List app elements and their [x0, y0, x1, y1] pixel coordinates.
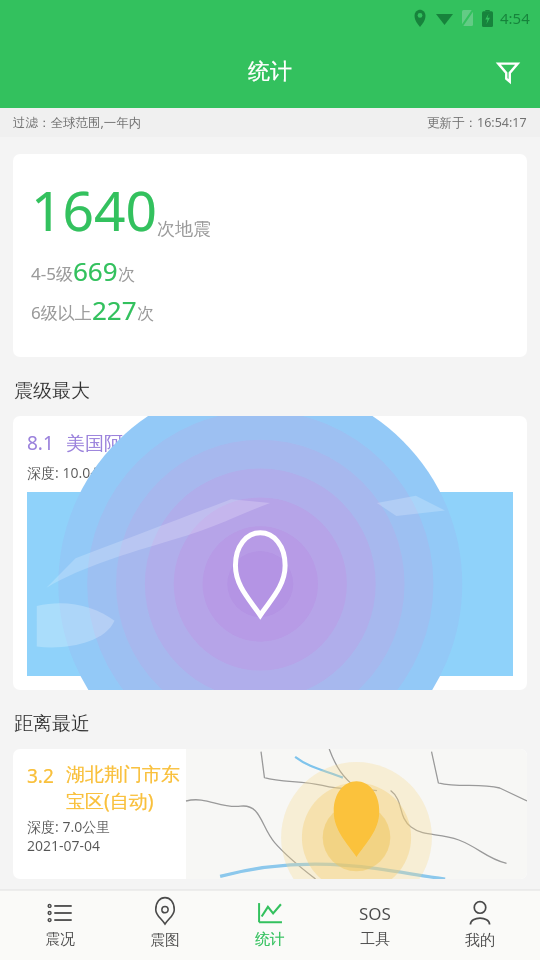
staticText: 震图 [150, 931, 180, 950]
button[interactable]: 8.1 [13, 416, 527, 690]
staticText: 2021-07-04 [27, 836, 101, 855]
staticText: 湖北荆门市东宝区(自动) [66, 763, 186, 813]
staticText: 3.2 [27, 763, 54, 789]
staticText: 震况 [45, 930, 75, 949]
staticText: 过滤：全球范围,一年内 [13, 114, 142, 131]
staticText: 次 [137, 303, 154, 324]
staticText: SOS [359, 902, 391, 924]
button[interactable]: 1640 [13, 154, 527, 357]
staticText: 6级以上 [31, 301, 92, 324]
staticText: 4:54 [500, 8, 530, 28]
button[interactable]: 震况 [15, 890, 105, 960]
staticText: 深度: 7.0公里 [27, 817, 111, 836]
staticText: 距离最近 [14, 712, 90, 736]
staticText: 4-5级 [31, 262, 73, 285]
staticText: 深度: 10.0公里 2021-07-29 14:15:46 [27, 463, 258, 482]
staticText: 次 [118, 264, 135, 285]
staticText: 1640 [31, 172, 157, 247]
staticText: 8.1 [27, 430, 54, 456]
button[interactable]: 我的 [435, 890, 525, 960]
staticText: 227 [92, 292, 137, 327]
button[interactable]: SOS [330, 890, 420, 960]
staticText: 669 [73, 253, 118, 288]
button[interactable]: Filter [484, 48, 532, 96]
staticText: 统计 [255, 930, 285, 949]
staticText: 统计 [248, 58, 292, 86]
staticText: 更新于：16:54:17 [427, 114, 527, 131]
staticText: 震级最大 [14, 379, 90, 403]
staticText: 工具 [360, 930, 390, 949]
button[interactable]: 统计 [225, 890, 315, 960]
button[interactable]: 3.2 [13, 749, 527, 879]
button[interactable]: 震图 [120, 890, 210, 960]
staticText: 我的 [465, 931, 495, 950]
staticText: 美国阿拉斯加州以南海域(正式) [66, 430, 325, 456]
staticText: 次地震 [157, 218, 211, 241]
